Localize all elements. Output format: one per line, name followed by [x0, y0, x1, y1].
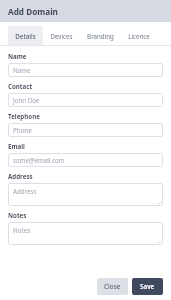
button[interactable]: Notes — [8, 222, 163, 245]
staticText: Email — [8, 142, 25, 150]
button[interactable]: John Doe — [8, 93, 163, 107]
staticText: Add Domain — [8, 6, 58, 17]
staticText: Telephone — [8, 112, 40, 120]
staticText: Contact — [8, 82, 33, 90]
staticText: Details — [15, 32, 36, 40]
staticText: Licence — [128, 32, 150, 40]
button[interactable]: some@email.com — [8, 153, 163, 167]
staticText: Phone — [13, 126, 32, 134]
button[interactable]: Save — [132, 278, 163, 295]
staticText: John Doe — [13, 96, 40, 104]
staticText: some@email.com — [13, 156, 65, 164]
button[interactable]: Branding — [80, 26, 121, 46]
button[interactable]: Phone — [8, 123, 163, 137]
button[interactable]: Details — [8, 26, 43, 46]
button[interactable]: Close — [97, 278, 128, 295]
button[interactable]: Licence — [121, 26, 157, 46]
button[interactable]: Name — [8, 63, 163, 77]
staticText: Name — [13, 66, 31, 74]
staticText: Notes — [8, 211, 27, 219]
staticText: Address — [8, 172, 33, 180]
staticText: Save — [140, 282, 155, 291]
staticText: Devices — [50, 32, 73, 40]
button[interactable]: Address — [8, 183, 163, 206]
button[interactable]: Devices — [43, 26, 80, 46]
staticText: Branding — [87, 32, 114, 40]
staticText: Address — [13, 187, 37, 195]
staticText: Close — [104, 282, 121, 291]
staticText: Notes — [13, 226, 31, 234]
staticText: Name — [8, 52, 27, 60]
